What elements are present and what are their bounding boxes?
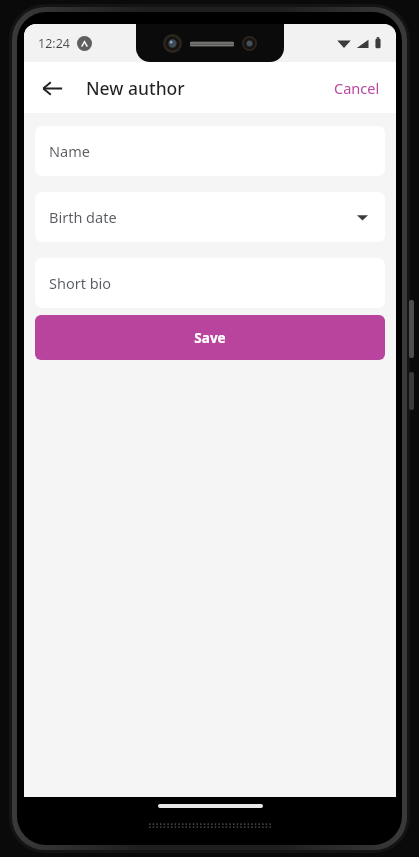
staticText: Birth date	[49, 207, 117, 227]
button[interactable]: Birth date	[35, 192, 385, 242]
other: Open date picker	[353, 208, 371, 226]
button[interactable]: Name	[35, 126, 385, 176]
staticText: Save	[194, 329, 226, 347]
button[interactable]: Save	[35, 315, 385, 360]
button[interactable]: Back	[32, 68, 72, 108]
staticText: Short bio	[49, 273, 112, 293]
button[interactable]: Cancel	[324, 70, 390, 106]
button[interactable]: Short bio	[35, 258, 385, 308]
staticText: 12:24	[38, 35, 70, 52]
staticText: New author	[86, 76, 185, 100]
staticText: Name	[49, 141, 90, 161]
staticText: Cancel	[334, 78, 380, 98]
